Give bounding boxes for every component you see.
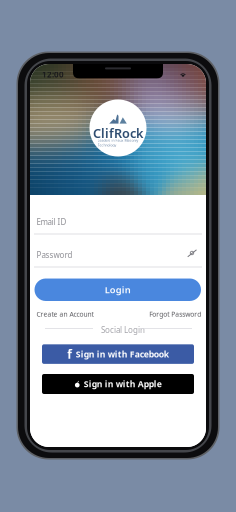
button[interactable]: Sign in with Apple [42,374,194,394]
button[interactable]: Login [34,278,201,301]
staticText: Login [105,283,131,296]
staticText: Sign in with Apple [84,378,162,390]
button[interactable]: Create an Account [36,309,93,319]
staticText: Email ID [36,216,66,227]
staticText: f [67,346,72,362]
staticText: Forgot Password [149,309,201,319]
staticText: Create an Account [36,309,93,319]
staticText: Sign in with Facebook [76,348,169,360]
staticText: Password [36,249,72,260]
staticText: 12:00 [42,69,64,80]
staticText: Social Login [101,324,145,335]
button[interactable]: f [42,344,194,364]
staticText: ClifRock [93,124,143,142]
staticText: Leaders in Faux Masonry Technology [97,138,138,147]
button[interactable]: Forgot Password [149,309,201,319]
